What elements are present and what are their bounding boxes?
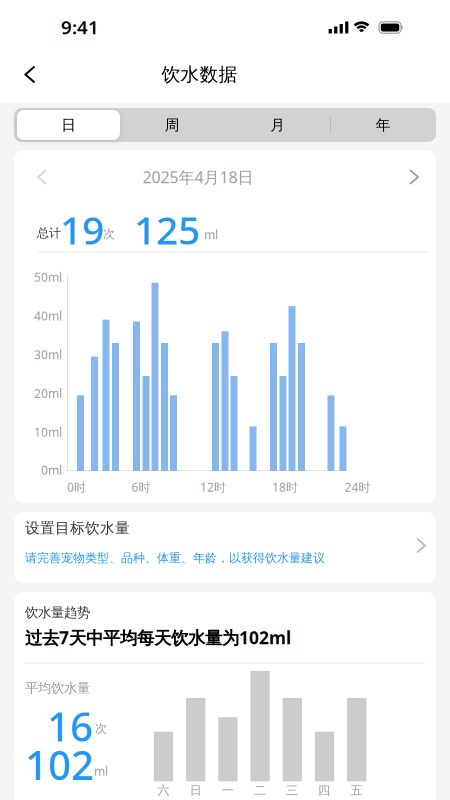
staticText: 六: [157, 783, 169, 798]
staticText: ml: [94, 763, 108, 779]
staticText: 10ml: [34, 424, 62, 440]
staticText: 月: [270, 116, 285, 134]
staticText: ml: [204, 226, 218, 242]
staticText: 125: [134, 204, 200, 255]
button[interactable]: Next day: [398, 158, 430, 196]
staticText: 6时: [131, 479, 150, 495]
button[interactable]: 设置目标饮水量: [14, 512, 436, 583]
staticText: 饮水数据: [161, 63, 237, 86]
button[interactable]: 周: [119, 108, 225, 142]
staticText: 日: [190, 783, 202, 798]
button[interactable]: Back: [13, 56, 46, 92]
staticText: 0时: [67, 479, 86, 495]
staticText: 19: [60, 204, 104, 255]
staticText: 年: [376, 116, 391, 134]
staticText: 0ml: [41, 462, 62, 478]
staticText: 50ml: [34, 269, 62, 285]
staticText: 9:41: [61, 15, 99, 39]
button[interactable]: 日: [16, 108, 121, 142]
staticText: 次: [103, 227, 115, 241]
staticText: 24时: [344, 479, 370, 495]
staticText: 20ml: [34, 385, 62, 401]
button[interactable]: 月: [225, 108, 330, 142]
staticText: 总计: [37, 226, 61, 240]
button[interactable]: 年: [330, 108, 436, 142]
staticText: 16: [47, 699, 93, 752]
staticText: 五: [350, 783, 362, 798]
staticText: 2025年4月18日: [142, 166, 253, 188]
staticText: 18时: [272, 479, 298, 495]
staticText: 30ml: [34, 347, 62, 362]
staticText: 饮水量趋势: [25, 604, 90, 621]
button[interactable]: Previous day: [26, 158, 58, 196]
staticText: 平均饮水量: [25, 680, 90, 696]
staticText: 周: [165, 116, 180, 134]
staticText: 次: [95, 721, 107, 736]
staticText: 四: [318, 783, 330, 798]
staticText: 12时: [200, 479, 226, 495]
staticText: 日: [61, 116, 76, 134]
staticText: 过去7天中平均每天饮水量为102ml: [25, 626, 291, 649]
staticText: 二: [254, 783, 266, 798]
staticText: 一: [222, 783, 234, 798]
staticText: 102: [25, 738, 94, 791]
staticText: 请完善宠物类型、品种、体重、年龄，以获得饮水量建议: [25, 551, 325, 565]
staticText: 三: [286, 783, 298, 798]
staticText: 设置目标饮水量: [25, 519, 130, 537]
staticText: 40ml: [34, 308, 62, 324]
